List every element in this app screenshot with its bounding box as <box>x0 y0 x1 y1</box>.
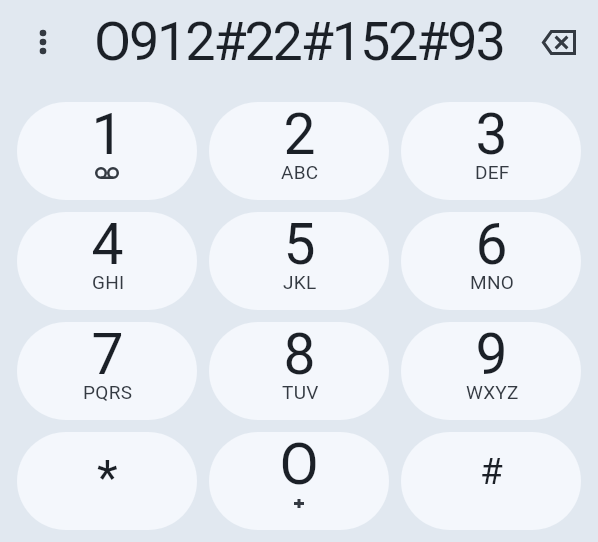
staticText: * <box>97 449 118 505</box>
staticText: MNO <box>470 271 515 293</box>
staticText: 6 <box>475 212 508 278</box>
staticText: 1 <box>91 102 124 168</box>
staticText: ABC <box>281 161 319 183</box>
button[interactable]: 6 <box>401 212 581 310</box>
staticText: WXYZ <box>466 381 519 403</box>
staticText: 9 <box>475 322 508 388</box>
button[interactable]: 7 <box>17 322 197 420</box>
button[interactable]: 9 <box>401 322 581 420</box>
staticText: 7 <box>91 322 124 388</box>
staticText: O <box>279 432 319 498</box>
button[interactable]: Backspace <box>534 18 582 66</box>
button[interactable]: 2 <box>209 102 389 200</box>
staticText: 2 <box>283 102 316 168</box>
staticText: 5 <box>283 212 316 278</box>
staticText: # <box>480 450 503 493</box>
staticText: JKL <box>283 271 317 293</box>
staticText: 8 <box>283 322 316 388</box>
button[interactable]: 1 <box>17 102 197 200</box>
staticText: O912#22#152#93 <box>94 10 504 73</box>
staticText: DEF <box>475 161 510 183</box>
button[interactable]: More options <box>19 18 67 66</box>
button[interactable]: # <box>401 432 581 530</box>
staticText: 4 <box>91 212 124 278</box>
button[interactable]: O <box>209 432 389 530</box>
staticText: GHI <box>92 271 125 293</box>
staticText: 3 <box>475 102 508 168</box>
staticText: PQRS <box>83 381 133 403</box>
button[interactable]: 3 <box>401 102 581 200</box>
staticText: TUV <box>282 381 319 403</box>
button[interactable]: 5 <box>209 212 389 310</box>
button[interactable]: 4 <box>17 212 197 310</box>
button[interactable]: * <box>17 432 197 530</box>
button[interactable]: 8 <box>209 322 389 420</box>
